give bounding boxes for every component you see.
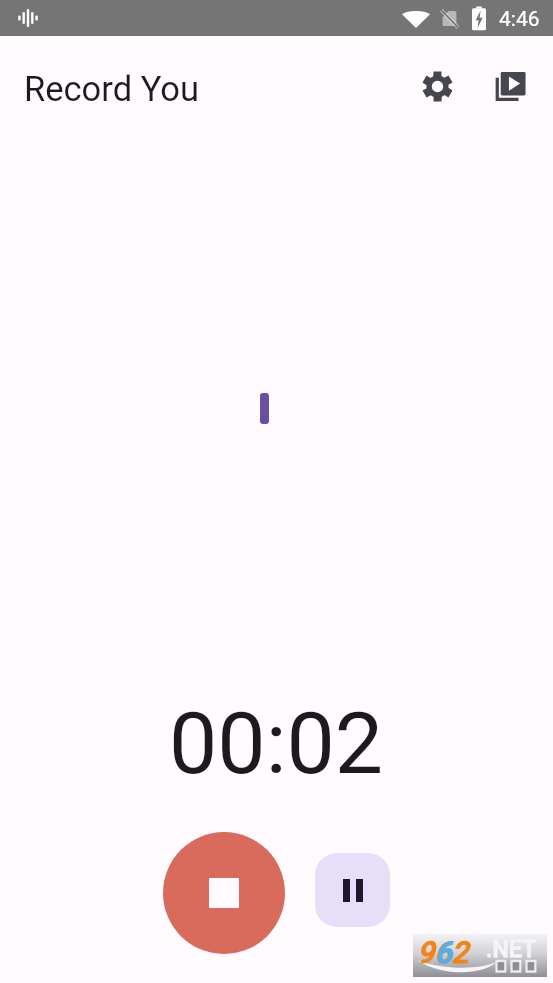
button[interactable]: Settings [413,62,461,110]
staticText: 6 [435,935,453,970]
staticText: 00:02 [169,693,384,794]
staticText: 962 [417,935,469,970]
staticText: 4:46 [499,7,540,32]
button[interactable]: Stop recording [163,832,285,954]
button[interactable]: Pause recording [315,853,390,927]
staticText: Record You [24,69,199,109]
staticText: .NET [486,936,536,963]
button[interactable]: Recordings library [486,62,534,110]
